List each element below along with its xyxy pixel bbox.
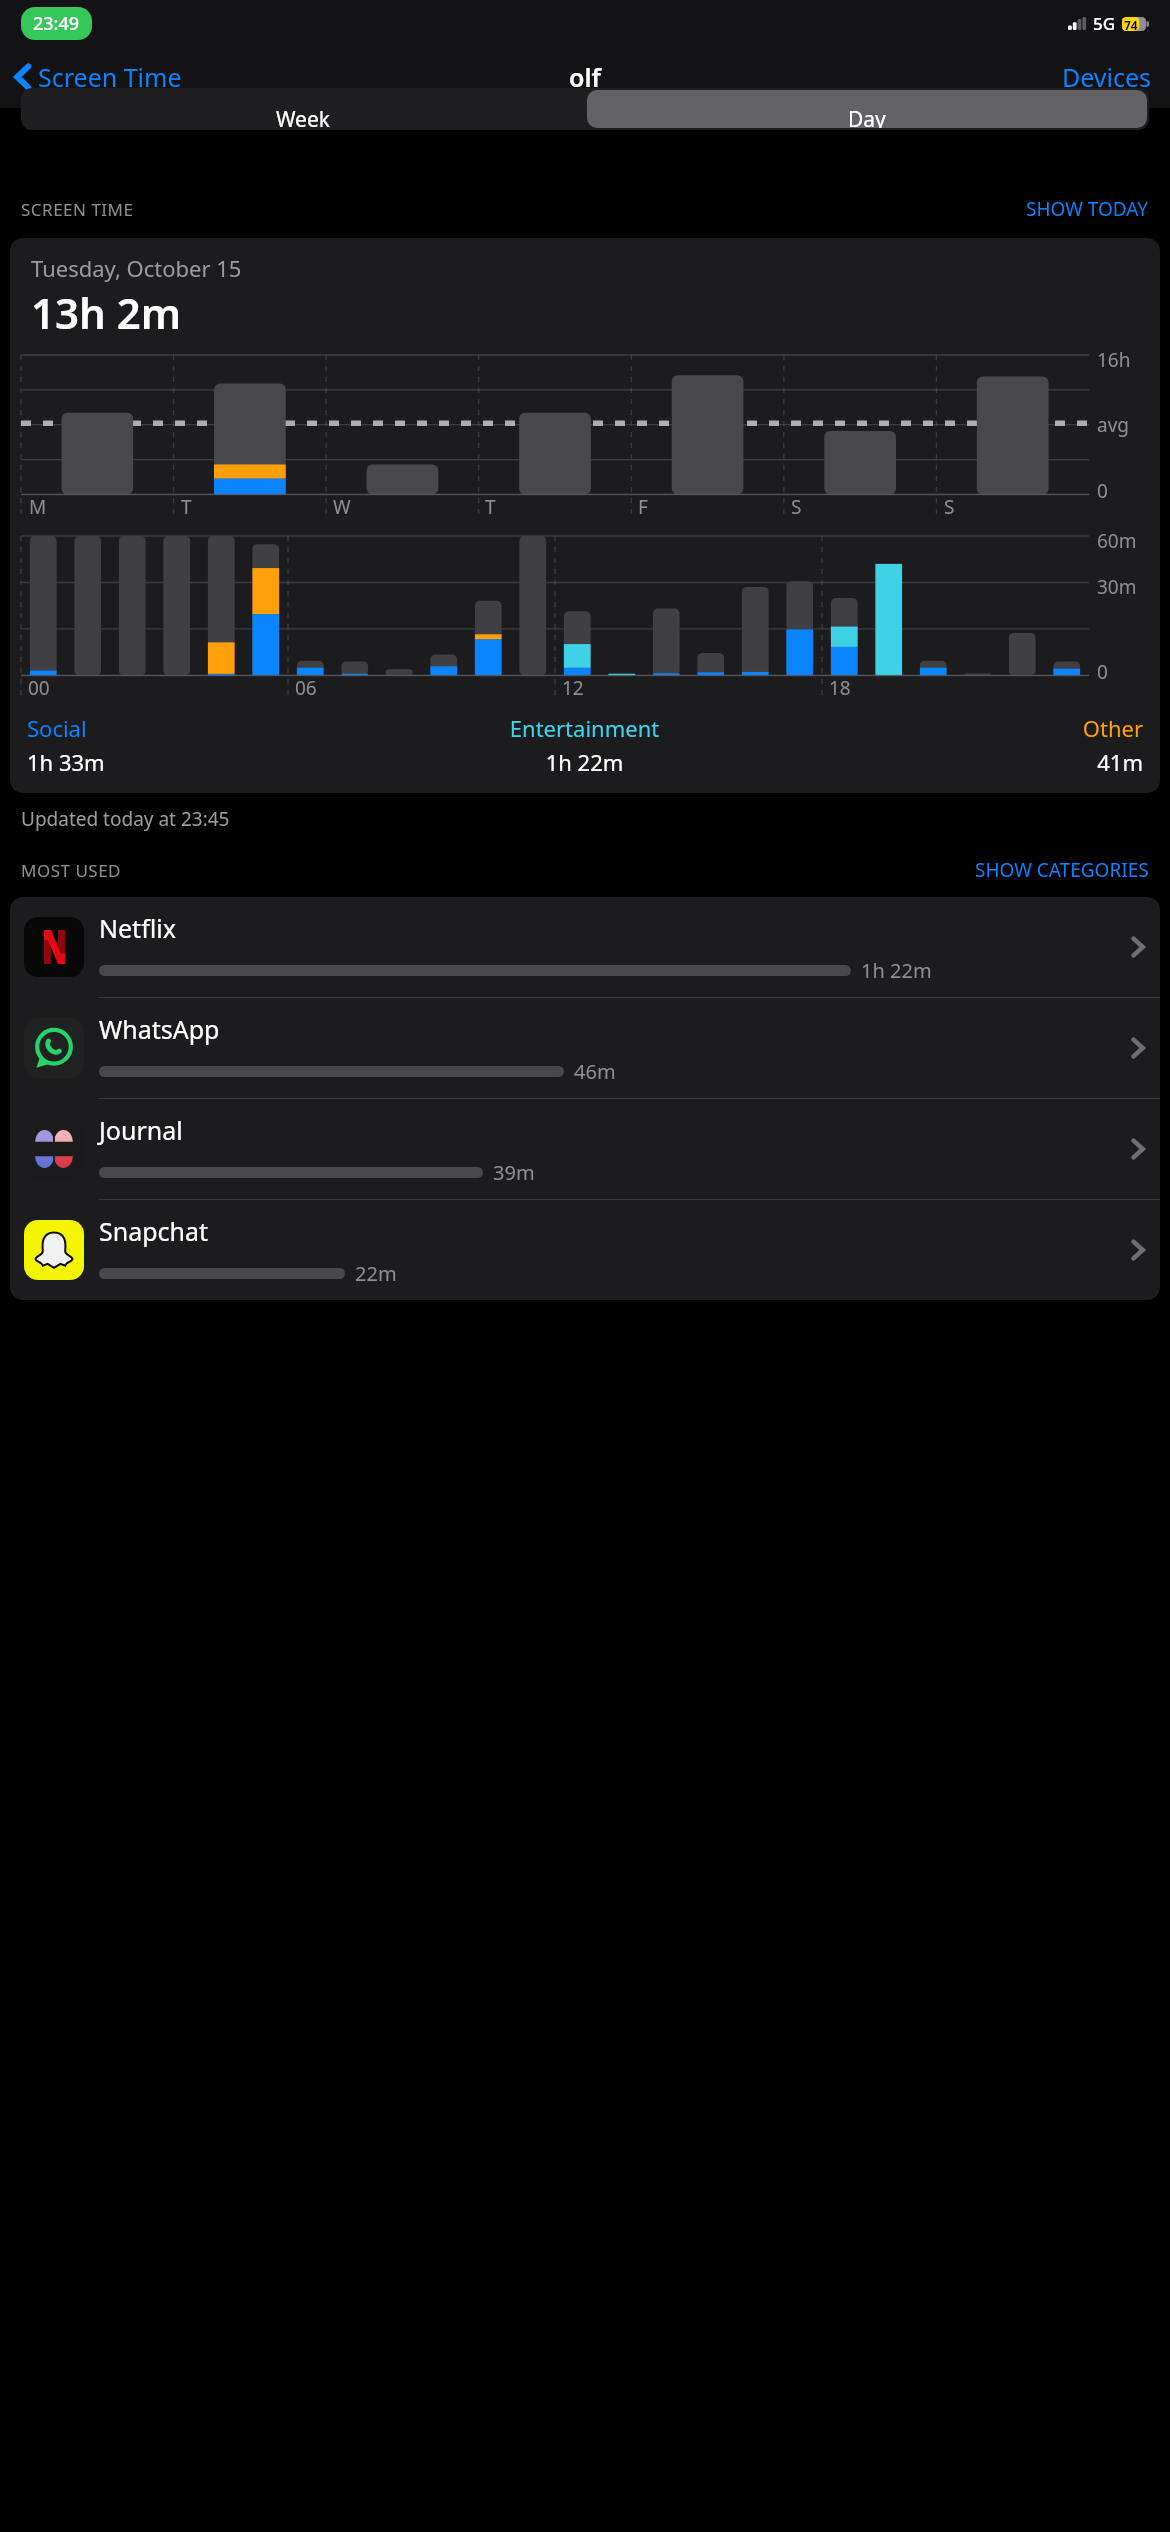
staticText: 46m (574, 1058, 616, 1085)
staticText: olf (569, 60, 601, 94)
button[interactable]: Devices (1062, 60, 1170, 94)
staticText: 13h 2m (31, 284, 182, 341)
staticText: 30m (1097, 574, 1137, 600)
other: Open Netflix details (1130, 933, 1146, 961)
staticText: 0 (1097, 478, 1108, 504)
button[interactable]: Day (587, 90, 1147, 128)
staticText: 1h 22m (375, 747, 794, 777)
staticText: 06 (295, 675, 317, 701)
staticText: Social (27, 713, 375, 743)
staticText: 41m (794, 747, 1143, 777)
staticText: 12 (562, 675, 584, 701)
staticText: SHOW CATEGORIES (975, 857, 1149, 883)
staticText: T (181, 494, 192, 520)
staticText: S (791, 494, 802, 520)
staticText: 39m (493, 1159, 535, 1186)
staticText: 1h 22m (861, 957, 932, 984)
staticText: SCREEN TIME (21, 198, 134, 221)
staticText: 22m (355, 1260, 397, 1287)
staticText: Day (848, 105, 886, 128)
staticText: F (638, 494, 648, 520)
staticText: T (485, 494, 496, 520)
button[interactable]: Week (21, 88, 585, 130)
staticText: 0 (1097, 659, 1108, 685)
staticText: 74 (1124, 17, 1138, 31)
staticText: Week (276, 105, 331, 130)
button[interactable]: Journal (10, 1099, 1160, 1200)
staticText: WhatsApp (99, 1012, 220, 1046)
staticText: S (944, 494, 955, 520)
staticText: Entertainment (375, 713, 794, 743)
other: Open Snapchat details (1130, 1236, 1146, 1264)
staticText: Updated today at 23:45 (21, 806, 230, 832)
button[interactable]: Screen Time (12, 60, 188, 94)
button[interactable]: SHOW CATEGORIES (975, 857, 1149, 883)
staticText: 1h 33m (27, 747, 375, 777)
staticText: Netflix (99, 911, 176, 945)
staticText: Other (794, 713, 1143, 743)
staticText: M (29, 494, 47, 520)
staticText: avg (1097, 412, 1129, 438)
staticText: 60m (1097, 528, 1137, 554)
button[interactable]: Netflix (10, 897, 1160, 998)
staticText: 5G (1093, 12, 1116, 35)
staticText: 23:49 (33, 11, 80, 36)
staticText: Tuesday, October 15 (31, 253, 242, 283)
staticText: 18 (829, 675, 851, 701)
other: Open WhatsApp details (1130, 1034, 1146, 1062)
staticText: MOST USED (21, 859, 122, 882)
staticText: W (333, 494, 351, 520)
button[interactable]: Snapchat (10, 1200, 1160, 1300)
button[interactable]: SHOW TODAY (1026, 196, 1149, 222)
staticText: Snapchat (99, 1214, 209, 1248)
staticText: Journal (99, 1113, 183, 1147)
staticText: Screen Time (38, 60, 182, 94)
staticText: 16h (1097, 347, 1131, 373)
button[interactable]: WhatsApp (10, 998, 1160, 1099)
other: Open Journal details (1130, 1135, 1146, 1163)
staticText: SHOW TODAY (1026, 196, 1149, 222)
staticText: 00 (28, 675, 50, 701)
